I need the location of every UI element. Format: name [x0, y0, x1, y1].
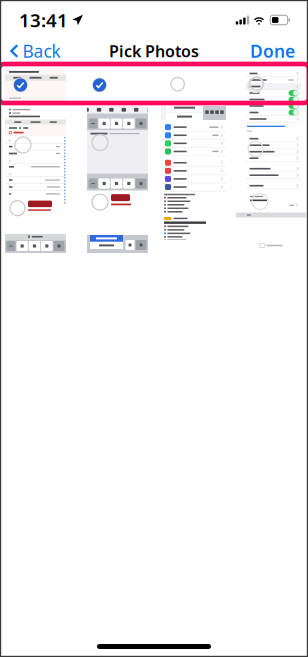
staticText: Pick Photos — [109, 40, 199, 62]
button[interactable]: Done — [240, 40, 308, 62]
button[interactable]: Selected photo — [87, 68, 148, 102]
button[interactable]: Photo — [161, 68, 226, 102]
staticText: Done — [250, 39, 295, 62]
staticText: Back — [23, 39, 61, 62]
staticText: 13:41 — [19, 8, 68, 32]
button[interactable]: Back — [0, 40, 71, 62]
button[interactable]: Photo — [236, 68, 306, 253]
button[interactable]: Selected photo — [5, 68, 66, 102]
button[interactable]: Photo — [5, 106, 66, 253]
button[interactable]: Photo — [161, 106, 226, 240]
button[interactable]: Photo — [87, 106, 148, 253]
